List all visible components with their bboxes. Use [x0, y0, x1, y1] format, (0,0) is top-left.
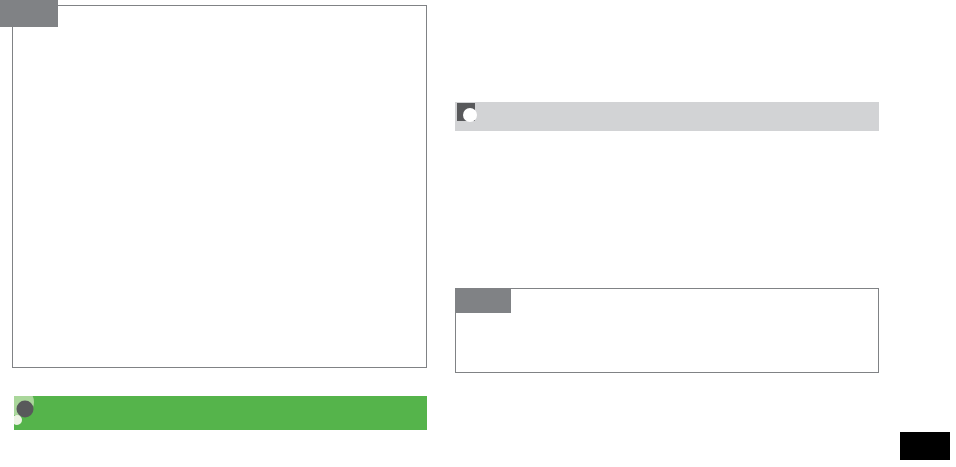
button[interactable]: Header bar: [455, 102, 879, 131]
button[interactable]: Green banner: [14, 396, 427, 430]
button[interactable]: [12, 5, 427, 368]
button[interactable]: [455, 288, 879, 373]
